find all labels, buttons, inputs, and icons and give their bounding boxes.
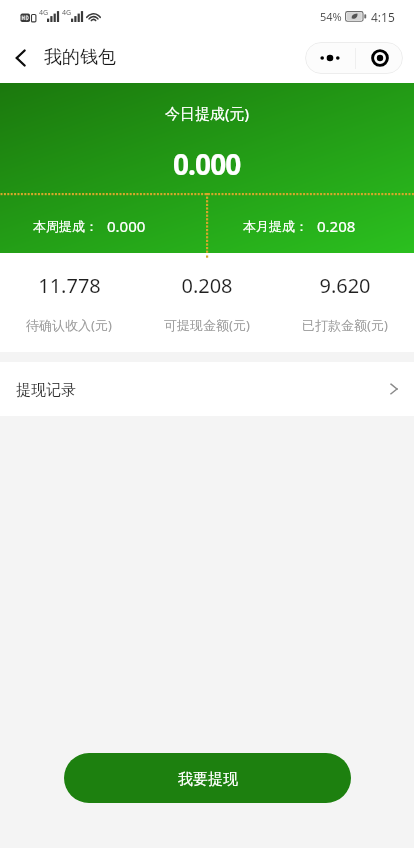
staticText: 0.208 [317,216,356,236]
staticText: 4G [39,8,49,18]
staticText: 提现记录 [16,381,76,400]
button[interactable]: 9.620 [276,253,414,352]
staticText: 我的钱包 [44,46,116,69]
staticText: 4:15 [371,9,395,25]
staticText: 4G [62,8,72,18]
button[interactable]: Back [0,32,44,83]
staticText: 本月提成： [243,218,308,234]
staticText: 本周提成： [33,218,98,234]
button[interactable]: 提现记录 [0,362,414,416]
button[interactable]: Close mini program [356,42,403,74]
staticText: 9.620 [319,272,371,299]
staticText: 可提现金额(元) [164,316,250,334]
staticText: 0.208 [181,272,233,299]
staticText: 我要提现 [178,770,238,789]
staticText: 54% [320,9,342,24]
staticText: 今日提成(元) [165,103,250,123]
button[interactable]: 0.208 [138,253,276,352]
staticText: 0.000 [173,145,241,183]
staticText: 待确认收入(元) [26,316,112,334]
button[interactable]: More options [305,42,355,74]
button[interactable]: 11.778 [0,253,138,352]
staticText: 0.000 [107,216,146,236]
staticText: 已打款金额(元) [302,316,388,334]
button[interactable]: 我要提现 [64,753,351,803]
staticText: 11.778 [38,272,101,299]
